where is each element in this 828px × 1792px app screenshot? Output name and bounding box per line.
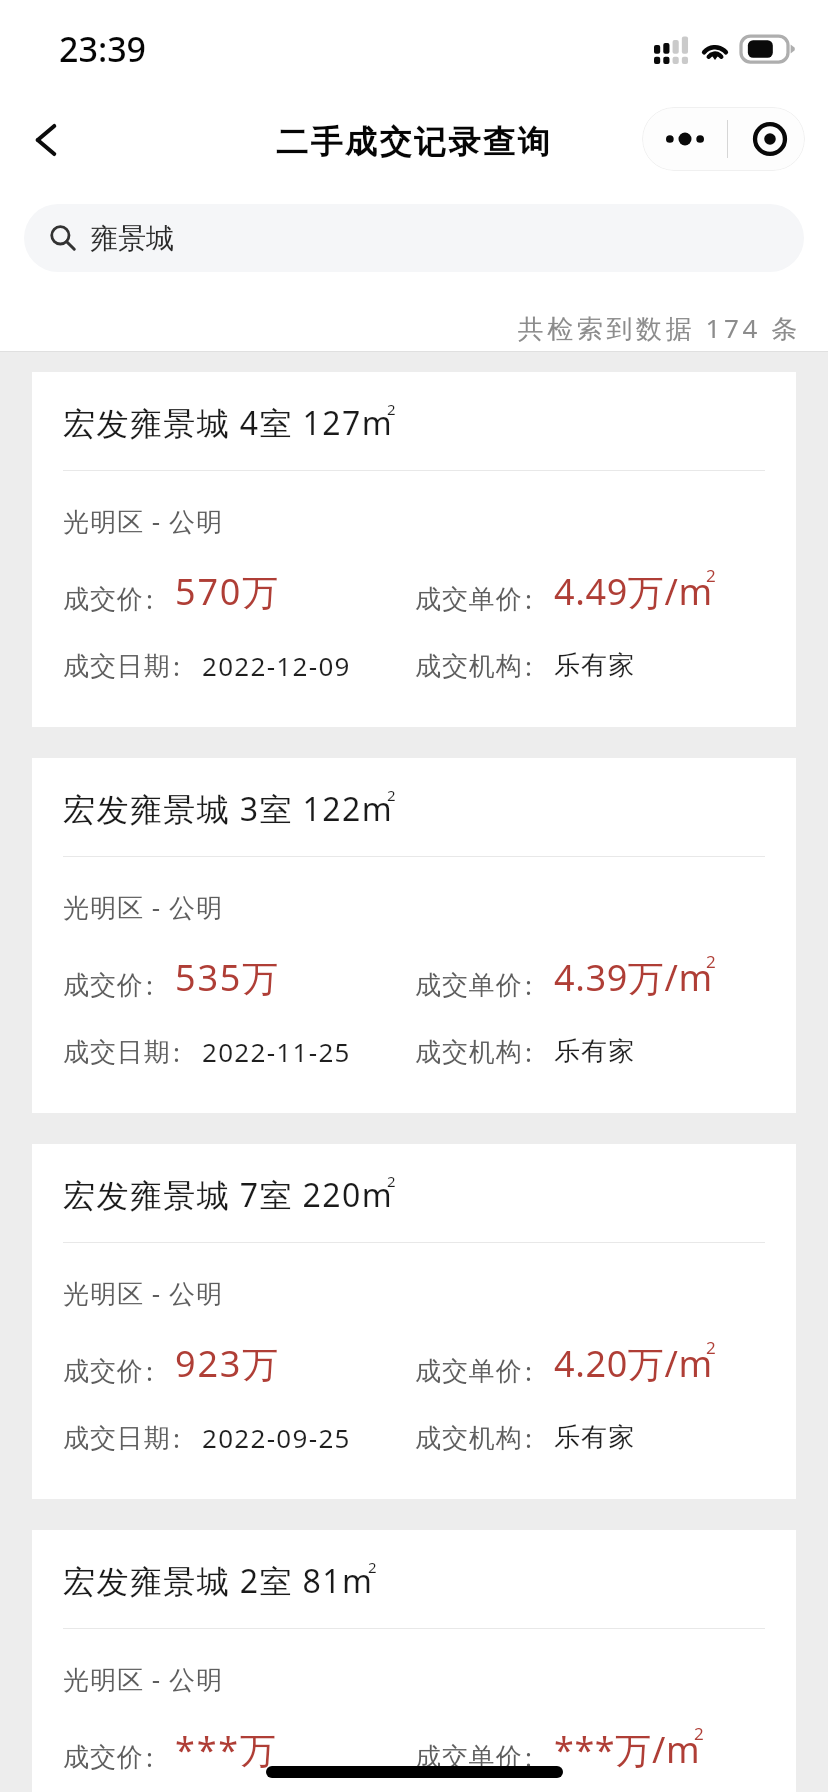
staticText: 光明区 - 公明 — [63, 1661, 223, 1697]
staticText: 成交单价 — [415, 1741, 523, 1774]
staticText: 2 — [387, 1171, 396, 1191]
staticText: : — [146, 967, 153, 1002]
button[interactable]: Close mini program — [728, 107, 805, 171]
staticText: 成交单价 — [415, 1355, 523, 1388]
staticText: 成交日期 — [63, 650, 171, 683]
staticText: 成交机构 — [415, 1422, 523, 1455]
button[interactable]: 宏发雍景城 2室 81m — [32, 1530, 796, 1792]
staticText: ***万/m — [554, 1725, 701, 1774]
staticText: : — [525, 648, 532, 683]
staticText: 宏发雍景城 7室 220m — [63, 1173, 393, 1217]
staticText: 570万 — [175, 567, 280, 616]
staticText: 光明区 - 公明 — [63, 889, 223, 925]
staticText: : — [525, 1420, 532, 1455]
staticText: 2022-12-09 — [202, 648, 351, 683]
staticText: 成交价 — [63, 969, 144, 1002]
button[interactable]: More options — [642, 107, 727, 171]
staticText: 成交单价 — [415, 969, 523, 1002]
staticText: 923万 — [175, 1339, 280, 1388]
button[interactable]: Back — [12, 106, 80, 174]
button[interactable]: 雍景城 — [24, 204, 804, 272]
staticText: 光明区 - 公明 — [63, 503, 223, 539]
staticText: : — [525, 967, 532, 1002]
staticText: 乐有家 — [554, 1421, 636, 1454]
staticText: : — [525, 1353, 532, 1388]
staticText: 成交价 — [63, 1741, 144, 1774]
staticText: 2022-09-25 — [202, 1420, 351, 1455]
staticText: 2 — [706, 1336, 716, 1359]
staticText: 成交价 — [63, 583, 144, 616]
staticText: : — [525, 1034, 532, 1069]
staticText: 二手成交记录查询 — [0, 122, 828, 162]
staticText: 宏发雍景城 2室 81m — [63, 1559, 374, 1603]
staticText: 雍景城 — [90, 221, 174, 256]
staticText: : — [146, 1739, 153, 1774]
staticText: 2 — [368, 1557, 377, 1577]
staticText: 成交机构 — [415, 1036, 523, 1069]
button[interactable]: 宏发雍景城 7室 220m — [32, 1144, 796, 1499]
staticText: : — [146, 1353, 153, 1388]
staticText: 乐有家 — [554, 1035, 636, 1068]
staticText: 535万 — [175, 953, 280, 1002]
staticText: ***万 — [175, 1725, 278, 1774]
staticText: 乐有家 — [554, 649, 636, 682]
staticText: 4.49万/m — [554, 567, 713, 616]
staticText: 2022-11-25 — [202, 1034, 351, 1069]
staticText: 共检索到数据 174 条 — [0, 310, 801, 346]
staticText: : — [146, 581, 153, 616]
button[interactable]: 宏发雍景城 4室 127m — [32, 372, 796, 727]
staticText: : — [173, 1034, 180, 1069]
staticText: 成交日期 — [63, 1422, 171, 1455]
staticText: 4.39万/m — [554, 953, 713, 1002]
staticText: 成交日期 — [63, 1036, 171, 1069]
staticText: 23:39 — [59, 26, 147, 72]
staticText: 成交机构 — [415, 650, 523, 683]
button[interactable]: 宏发雍景城 3室 122m — [32, 758, 796, 1113]
staticText: 成交价 — [63, 1355, 144, 1388]
staticText: 宏发雍景城 3室 122m — [63, 787, 393, 831]
staticText: 2 — [706, 950, 716, 973]
staticText: 成交单价 — [415, 583, 523, 616]
staticText: : — [525, 1739, 532, 1774]
staticText: : — [173, 1420, 180, 1455]
staticText: 2 — [387, 785, 396, 805]
staticText: : — [173, 648, 180, 683]
staticText: 宏发雍景城 4室 127m — [63, 401, 393, 445]
staticText: 光明区 - 公明 — [63, 1275, 223, 1311]
staticText: 2 — [387, 399, 396, 419]
staticText: 2 — [706, 564, 716, 587]
staticText: 4.20万/m — [554, 1339, 713, 1388]
staticText: : — [525, 581, 532, 616]
staticText: 2 — [694, 1722, 704, 1745]
